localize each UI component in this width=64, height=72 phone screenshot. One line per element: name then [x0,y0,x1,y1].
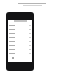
button[interactable] [8,27,32,31]
button[interactable] [8,43,32,47]
button[interactable] [8,35,32,39]
button[interactable] [8,51,32,55]
button[interactable] [8,31,32,35]
button[interactable] [8,23,32,27]
button[interactable] [8,39,32,43]
button[interactable] [8,47,32,51]
